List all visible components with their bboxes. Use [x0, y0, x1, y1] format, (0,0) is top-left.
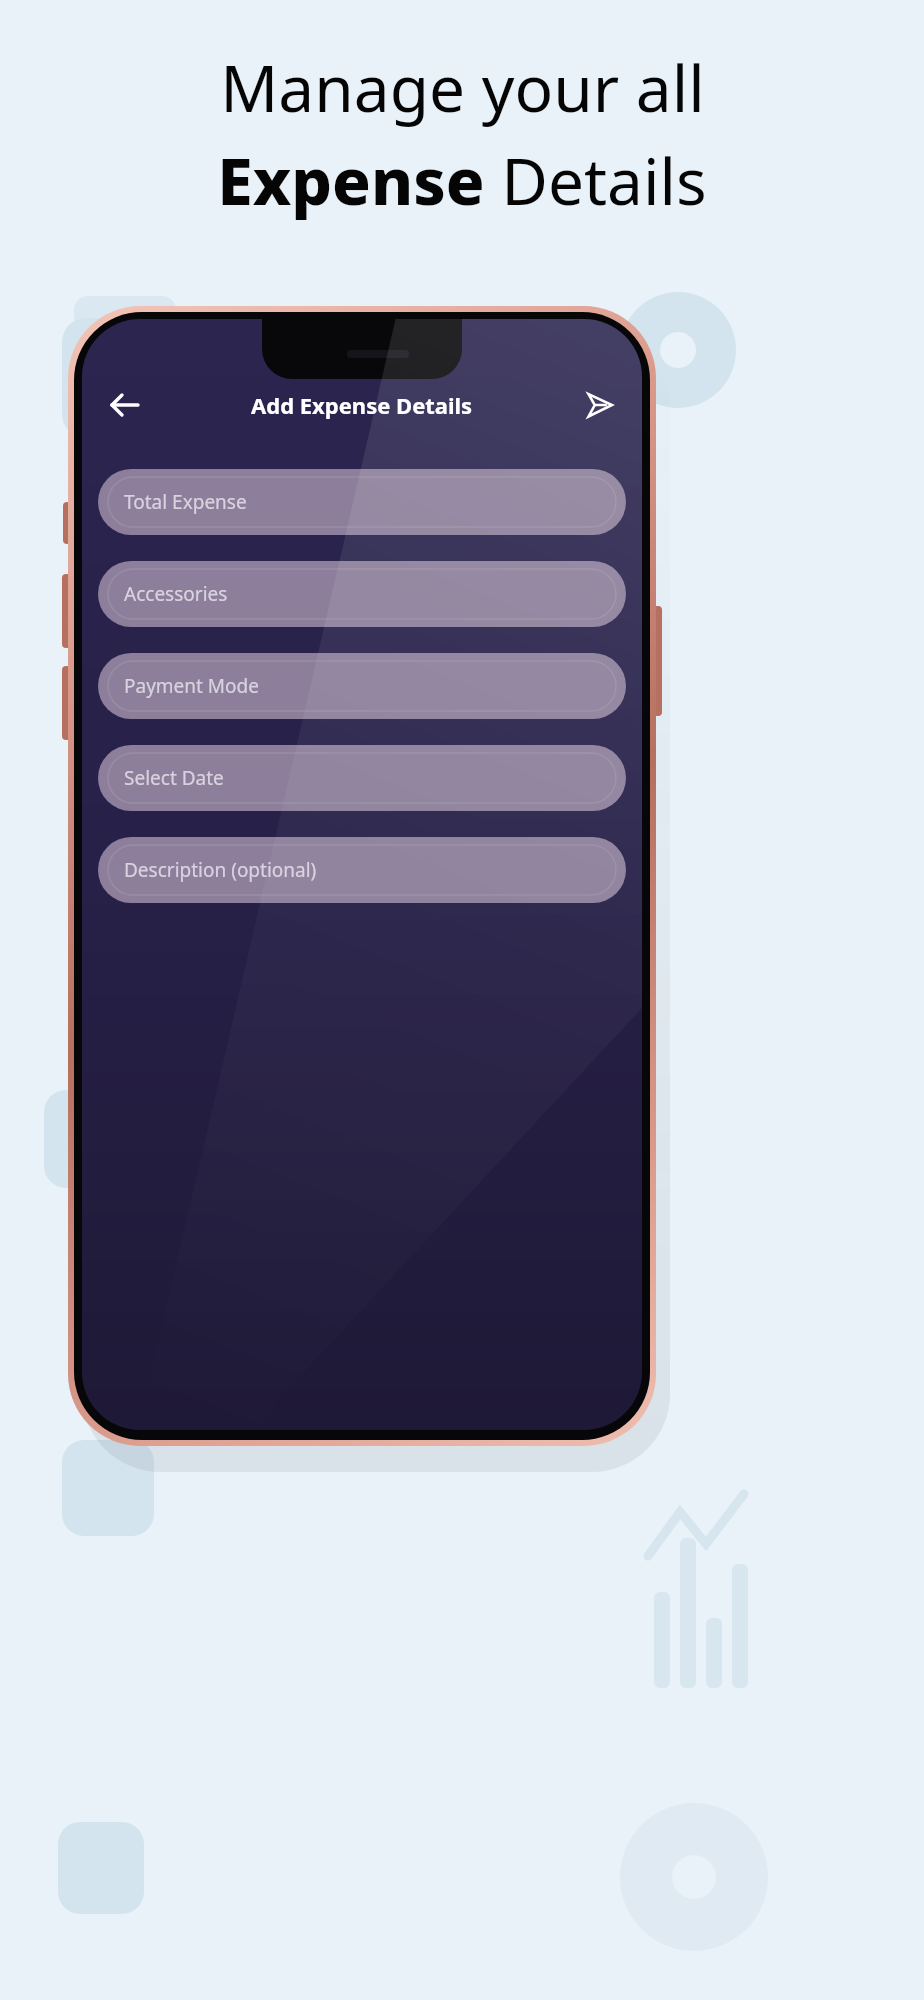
button[interactable]: Accessories: [98, 561, 626, 627]
button[interactable]: Total Expense: [98, 469, 626, 535]
button[interactable]: Description (optional): [98, 837, 626, 903]
button[interactable]: Back: [100, 381, 148, 429]
button[interactable]: Send: [576, 381, 624, 429]
staticText: Manage your all: [220, 44, 705, 131]
staticText: Total Expense: [124, 489, 247, 515]
button[interactable]: Payment Mode: [98, 653, 626, 719]
staticText: Description (optional): [124, 857, 317, 883]
staticText: Expense Details: [217, 137, 707, 224]
staticText: Accessories: [124, 581, 228, 607]
staticText: Select Date: [124, 765, 224, 791]
button[interactable]: Select Date: [98, 745, 626, 811]
staticText: Add Expense Details: [251, 390, 473, 420]
staticText: Payment Mode: [124, 673, 259, 699]
